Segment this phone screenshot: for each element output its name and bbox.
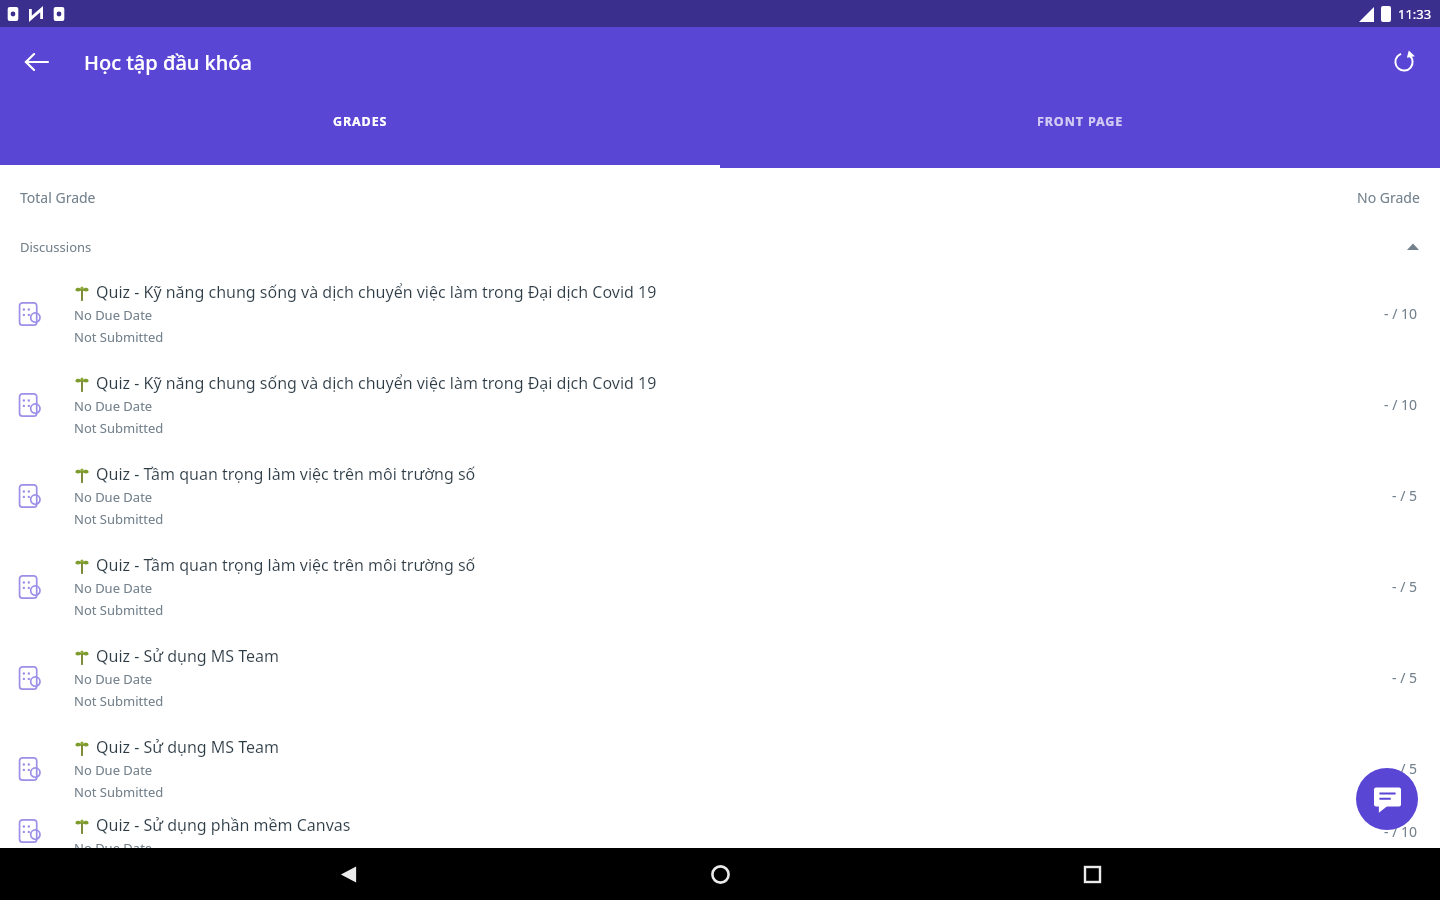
staticText: Quiz - Tầm quan trọng làm việc trên môi … <box>96 554 476 576</box>
button[interactable]: Quiz - Sử dụng MS Team <box>0 632 1440 723</box>
staticText: No Due Date <box>74 761 153 779</box>
button[interactable]: Quiz - Sử dụng MS Team <box>0 723 1440 814</box>
staticText: No Due Date <box>74 839 153 848</box>
staticText: No Due Date <box>74 579 153 597</box>
staticText: Total Grade <box>20 188 96 207</box>
staticText: Not Submitted <box>74 328 164 346</box>
button[interactable]: Discussions <box>0 226 1440 268</box>
staticText: Discussions <box>20 238 92 256</box>
button[interactable]: Quiz - Tầm quan trọng làm việc trên môi … <box>0 541 1440 632</box>
staticText: FRONT PAGE <box>1037 113 1124 130</box>
button[interactable]: Back <box>14 40 58 84</box>
staticText: - / 10 <box>1384 822 1418 841</box>
staticText: No Due Date <box>74 488 153 506</box>
staticText: Not Submitted <box>74 783 164 801</box>
button[interactable]: Home <box>696 850 744 898</box>
staticText: Quiz - Kỹ năng chung sống và dịch chuyển… <box>96 281 657 303</box>
staticText: - / 5 <box>1392 486 1418 505</box>
button[interactable]: FRONT PAGE <box>720 97 1440 168</box>
staticText: 11:33 <box>1398 5 1432 23</box>
button[interactable]: Quiz - Sử dụng phần mềm Canvas <box>0 814 1440 848</box>
button[interactable]: Quiz - Tầm quan trọng làm việc trên môi … <box>0 450 1440 541</box>
staticText: Not Submitted <box>74 601 164 619</box>
button[interactable]: Back <box>324 850 372 898</box>
button[interactable]: Refresh <box>1382 40 1426 84</box>
staticText: No Grade <box>1357 188 1420 207</box>
button[interactable]: Recents <box>1068 850 1116 898</box>
staticText: Học tập đầu khóa <box>84 49 252 76</box>
staticText: Quiz - Sử dụng MS Team <box>96 736 280 758</box>
staticText: Not Submitted <box>74 692 164 710</box>
button[interactable]: Quiz - Kỹ năng chung sống và dịch chuyển… <box>0 268 1440 359</box>
button[interactable]: Total Grade <box>0 168 1440 226</box>
button[interactable]: GRADES <box>0 97 720 168</box>
staticText: - / 10 <box>1384 304 1418 323</box>
staticText: Quiz - Sử dụng MS Team <box>96 645 280 667</box>
staticText: Not Submitted <box>74 510 164 528</box>
staticText: - / 5 <box>1392 759 1418 778</box>
staticText: - / 10 <box>1384 395 1418 414</box>
staticText: Quiz - Tầm quan trọng làm việc trên môi … <box>96 463 476 485</box>
button[interactable]: Quiz - Kỹ năng chung sống và dịch chuyển… <box>0 359 1440 450</box>
staticText: Quiz - Kỹ năng chung sống và dịch chuyển… <box>96 372 657 394</box>
staticText: GRADES <box>333 113 388 130</box>
staticText: No Due Date <box>74 670 153 688</box>
staticText: No Due Date <box>74 306 153 324</box>
staticText: Quiz - Sử dụng phần mềm Canvas <box>96 814 351 836</box>
staticText: Not Submitted <box>74 419 164 437</box>
staticText: No Due Date <box>74 397 153 415</box>
staticText: - / 5 <box>1392 577 1418 596</box>
staticText: - / 5 <box>1392 668 1418 687</box>
button[interactable]: Messages <box>1356 768 1418 830</box>
